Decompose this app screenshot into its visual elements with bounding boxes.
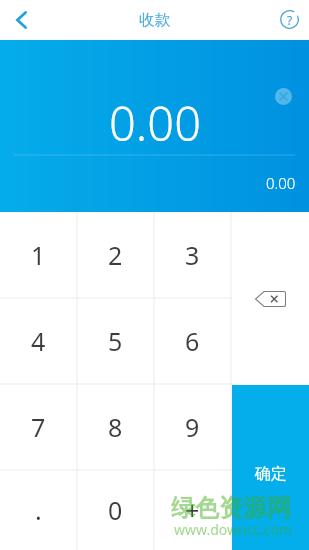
button[interactable]: 4 xyxy=(0,298,77,384)
staticText: 确定 xyxy=(255,464,287,484)
staticText: 8 xyxy=(108,410,123,444)
staticText: + xyxy=(185,493,200,527)
button[interactable]: 7 xyxy=(0,384,77,470)
button[interactable]: 3 xyxy=(154,212,231,298)
staticText: 6 xyxy=(185,324,200,358)
button[interactable]: Help xyxy=(270,0,309,40)
button[interactable]: 8 xyxy=(77,384,154,470)
staticText: 5 xyxy=(108,324,123,358)
button[interactable]: 9 xyxy=(154,384,231,470)
staticText: 绿色资源网 xyxy=(171,493,291,523)
button[interactable]: 6 xyxy=(154,298,231,384)
button[interactable]: + xyxy=(154,470,231,550)
button[interactable]: 0 xyxy=(77,470,154,550)
button[interactable]: . xyxy=(0,470,77,550)
button[interactable]: Back xyxy=(0,0,42,40)
button[interactable]: 确定 xyxy=(232,385,309,550)
staticText: 3 xyxy=(185,238,200,272)
staticText: . xyxy=(35,493,42,527)
staticText: 收款 xyxy=(139,10,170,30)
staticText: 4 xyxy=(31,324,46,358)
button[interactable]: 5 xyxy=(77,298,154,384)
staticText: 9 xyxy=(185,410,200,444)
staticText: 1 xyxy=(31,238,46,272)
button[interactable]: Clear amount xyxy=(275,88,292,105)
button[interactable]: 1 xyxy=(0,212,77,298)
staticText: 0.00 xyxy=(109,91,201,155)
staticText: ? xyxy=(287,12,293,28)
button[interactable]: 2 xyxy=(77,212,154,298)
staticText: 0 xyxy=(108,493,123,527)
staticText: www.downcc.com xyxy=(174,520,293,539)
staticText: 2 xyxy=(108,238,123,272)
staticText: 7 xyxy=(31,410,46,444)
staticText: 0.00 xyxy=(266,173,296,193)
button[interactable]: Backspace xyxy=(231,212,309,385)
